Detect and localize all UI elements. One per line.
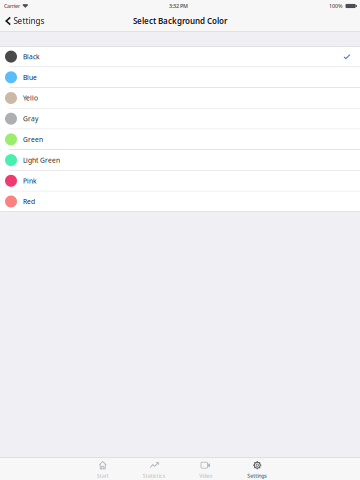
staticText: Light Green	[23, 156, 60, 165]
staticText: 3:32 PM	[169, 2, 188, 10]
staticText: 100%	[329, 2, 343, 10]
staticText: Carrier	[4, 2, 20, 10]
staticText: Black	[23, 52, 40, 61]
staticText: Pink	[23, 176, 37, 185]
button[interactable]: Pink	[0, 171, 360, 191]
staticText: Blue	[23, 73, 37, 82]
staticText: Gray	[23, 114, 38, 123]
staticText: Yello	[23, 94, 38, 102]
staticText: Video	[199, 472, 212, 479]
button[interactable]: Settings	[231, 457, 283, 480]
button[interactable]: Settings	[0, 11, 52, 30]
button[interactable]: Red	[0, 191, 360, 212]
button[interactable]: Light Green	[0, 150, 360, 170]
button[interactable]: Statistics	[128, 457, 180, 480]
button[interactable]: Blue	[0, 67, 360, 87]
staticText: Settings	[13, 16, 44, 26]
staticText: Green	[23, 135, 43, 144]
button[interactable]: Video	[180, 457, 231, 480]
staticText: Red	[23, 197, 35, 206]
staticText: Start	[97, 472, 109, 479]
button[interactable]: Gray	[0, 109, 360, 129]
button[interactable]: Green	[0, 129, 360, 149]
staticText: Settings	[247, 472, 267, 479]
button[interactable]: Start	[77, 457, 128, 480]
button[interactable]: Yello	[0, 88, 360, 108]
button[interactable]: Black	[0, 46, 360, 67]
staticText: Statistics	[143, 472, 166, 479]
staticText: Select Background Color	[133, 16, 227, 26]
